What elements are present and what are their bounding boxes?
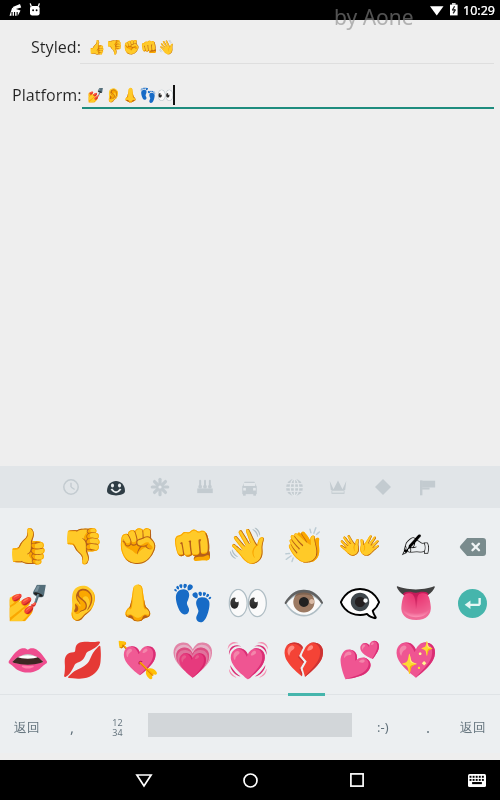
button[interactable]: Change keyboard [454, 760, 500, 800]
button[interactable]: , [54, 700, 90, 753]
button[interactable]: Symbols [316, 466, 360, 508]
staticText: 👅 [394, 583, 438, 624]
staticText: 返回 [460, 719, 486, 735]
staticText: 👊 [171, 526, 215, 567]
staticText: 💘 [116, 640, 160, 681]
button[interactable]: 返回 [4, 700, 50, 753]
button[interactable]: 💓 [220, 632, 276, 689]
button[interactable]: 👐 [332, 518, 388, 575]
staticText: , [70, 717, 75, 737]
button[interactable]: 💕 [332, 632, 388, 689]
button[interactable]: 👁‍🗨 [332, 575, 388, 632]
staticText: 👋 [226, 526, 270, 567]
staticText: 👍👎✊👊👋 [88, 39, 176, 55]
staticText: 👍 [6, 526, 50, 567]
staticText: :-) [377, 718, 389, 736]
button[interactable]: Places [227, 466, 271, 508]
staticText: 💔 [282, 640, 326, 681]
button[interactable]: . [410, 700, 446, 753]
staticText: 👁‍🗨 [338, 583, 382, 624]
staticText: 💅👂👃👣👀 [87, 87, 175, 103]
staticText: 👂 [61, 583, 105, 624]
button[interactable]: 👣 [165, 575, 220, 632]
staticText: 💅 [6, 583, 50, 624]
button[interactable]: Objects [272, 466, 316, 508]
staticText: . [426, 717, 431, 737]
staticText: 👣 [171, 583, 215, 624]
staticText: Platform: [12, 84, 82, 106]
staticText: by Aone [334, 3, 414, 32]
button[interactable]: Back [119, 760, 169, 800]
staticText: 👃 [116, 583, 160, 624]
button[interactable]: 👄 [0, 632, 55, 689]
button[interactable]: 👁 [276, 575, 332, 632]
staticText: 👏 [282, 526, 326, 567]
button[interactable]: 👍 [0, 518, 55, 575]
button[interactable]: 12 34 [98, 700, 136, 753]
staticText: 💗 [171, 640, 215, 681]
staticText: 👐 [338, 526, 382, 567]
button[interactable]: Recent apps [332, 760, 382, 800]
staticText: 👎 [61, 526, 105, 567]
button[interactable]: Smileys [94, 466, 138, 508]
button[interactable]: 💗 [165, 632, 220, 689]
button[interactable]: People [183, 466, 227, 508]
button[interactable]: 👀 [220, 575, 276, 632]
button[interactable]: 👂 [55, 575, 110, 632]
button[interactable]: 👊 [165, 518, 220, 575]
staticText: 👀 [226, 583, 270, 624]
button[interactable]: 👋 [220, 518, 276, 575]
staticText: 💕 [338, 640, 382, 681]
button[interactable]: 💋 [55, 632, 110, 689]
staticText: 💖 [394, 640, 438, 681]
button[interactable]: Flags [405, 466, 449, 508]
staticText: 12 34 [112, 716, 123, 738]
button[interactable]: Backspace [444, 518, 500, 575]
staticText: 💓 [226, 640, 270, 681]
button[interactable]: 👅 [388, 575, 444, 632]
button[interactable]: 💘 [110, 632, 165, 689]
button[interactable]: 💖 [388, 632, 444, 689]
staticText: ✊ [116, 526, 160, 567]
button[interactable]: :-) [362, 700, 404, 753]
button[interactable]: 👃 [110, 575, 165, 632]
staticText: ✍ [401, 526, 431, 567]
staticText: 👁 [282, 583, 326, 624]
button[interactable]: Nature [138, 466, 182, 508]
button[interactable]: ✍ [388, 518, 444, 575]
staticText: Styled: [31, 36, 82, 58]
staticText: 10:29 [463, 2, 495, 19]
staticText: 返回 [14, 719, 40, 735]
staticText: 💋 [61, 640, 105, 681]
button[interactable]: 💅 [0, 575, 55, 632]
button[interactable]: Activities [361, 466, 405, 508]
button[interactable]: Enter [444, 575, 500, 632]
button[interactable]: 👎 [55, 518, 110, 575]
button[interactable]: 👏 [276, 518, 332, 575]
staticText: 👄 [6, 640, 50, 681]
button[interactable]: Recent [49, 466, 93, 508]
button[interactable]: 返回 [450, 700, 496, 753]
button[interactable]: ✊ [110, 518, 165, 575]
button[interactable]: Home [225, 760, 275, 800]
button[interactable]: 💔 [276, 632, 332, 689]
